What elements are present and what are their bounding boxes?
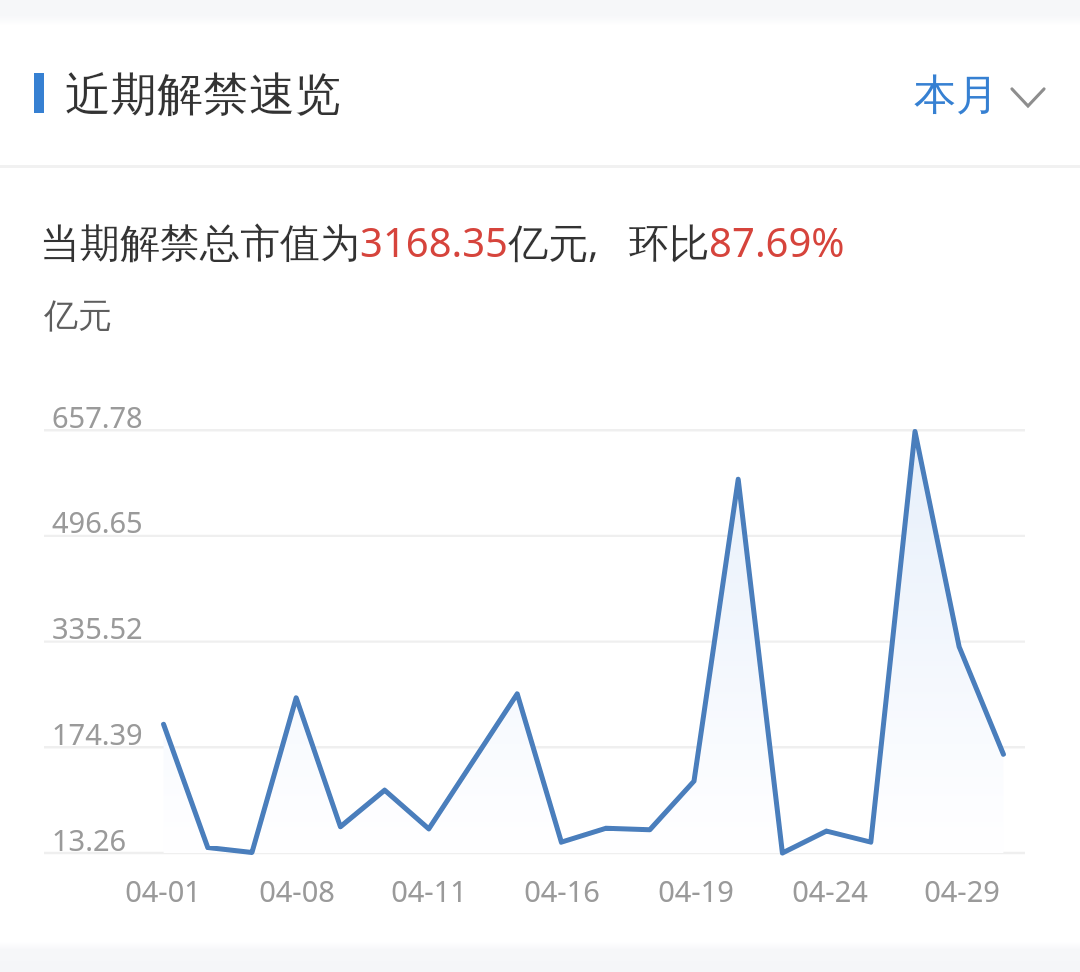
staticText: 04-11	[369, 871, 489, 910]
staticText: 657.78	[52, 397, 143, 436]
staticText: 当期解禁总市值为3168.35亿元, 环比87.69%	[40, 214, 845, 269]
staticText: 496.65	[52, 502, 143, 541]
staticText: 本月	[914, 69, 998, 122]
staticText: 174.39	[52, 714, 143, 753]
staticText: 亿元	[44, 294, 112, 337]
staticText: 335.52	[52, 608, 143, 647]
button[interactable]: 选择时间范围：本月	[904, 59, 1054, 131]
staticText: 04-16	[502, 871, 622, 910]
staticText: 近期解禁速览	[65, 66, 341, 124]
staticText: 04-24	[770, 871, 890, 910]
other: 展开	[1012, 89, 1044, 106]
staticText: 13.26	[52, 820, 127, 859]
button[interactable]: 近期解禁速览	[0, 22, 420, 161]
staticText: 04-08	[237, 871, 357, 910]
staticText: 04-19	[636, 871, 756, 910]
staticText: 04-29	[902, 871, 1022, 910]
staticText: 04-01	[103, 871, 223, 910]
